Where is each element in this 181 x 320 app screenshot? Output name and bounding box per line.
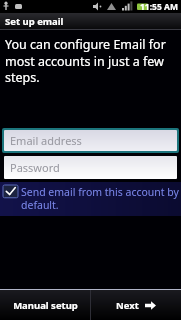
- button[interactable]: Password: [4, 156, 177, 179]
- staticText: Set up email: [5, 15, 64, 28]
- button[interactable]: Email address: [4, 130, 177, 151]
- staticText: Password: [10, 160, 60, 175]
- staticText: Next: [116, 299, 139, 312]
- staticText: Send email from this account by default.: [21, 185, 181, 212]
- button[interactable]: Next: [91, 290, 181, 320]
- staticText: Email address: [10, 133, 82, 148]
- button[interactable]: Manual setup: [0, 290, 90, 320]
- staticText: You can configure Email for most account…: [5, 36, 176, 85]
- button[interactable]: Send email from this account by default: [0, 182, 181, 216]
- other: Send email from this account by default: [3, 185, 18, 200]
- staticText: Manual setup: [13, 299, 78, 312]
- staticText: 11:55 AM: [140, 1, 178, 13]
